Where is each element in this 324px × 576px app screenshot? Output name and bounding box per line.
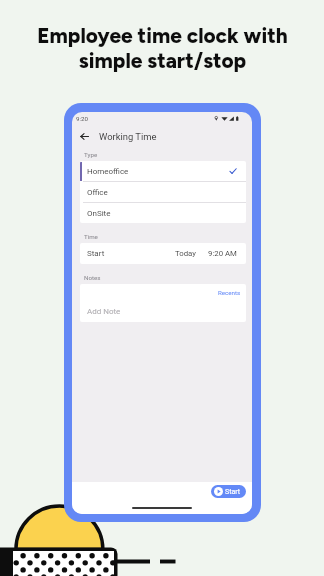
staticText: 9:20 AM	[208, 249, 237, 258]
staticText: Time	[84, 233, 98, 240]
staticText: 9:20	[76, 115, 88, 122]
button[interactable]: Homeoffice	[80, 161, 246, 181]
staticText: Start	[225, 488, 241, 496]
button[interactable]: Start	[211, 485, 246, 498]
button[interactable]: Recents	[218, 289, 241, 296]
staticText: Today	[175, 249, 196, 258]
button[interactable]: Start	[80, 243, 246, 264]
staticText: Add Note	[87, 307, 121, 316]
staticText: Homeoffice	[87, 167, 129, 176]
button[interactable]: OnSite	[80, 203, 246, 223]
staticText: Notes	[84, 274, 101, 281]
staticText: Type	[84, 151, 98, 158]
staticText: Start	[87, 249, 105, 258]
staticText: Office	[87, 188, 108, 197]
button[interactable]: Office	[80, 182, 246, 202]
button[interactable]: Back	[78, 130, 90, 142]
staticText: Employee time clock with simple start/st…	[37, 23, 288, 73]
staticText: OnSite	[87, 209, 111, 218]
staticText: Working Time	[99, 131, 157, 142]
